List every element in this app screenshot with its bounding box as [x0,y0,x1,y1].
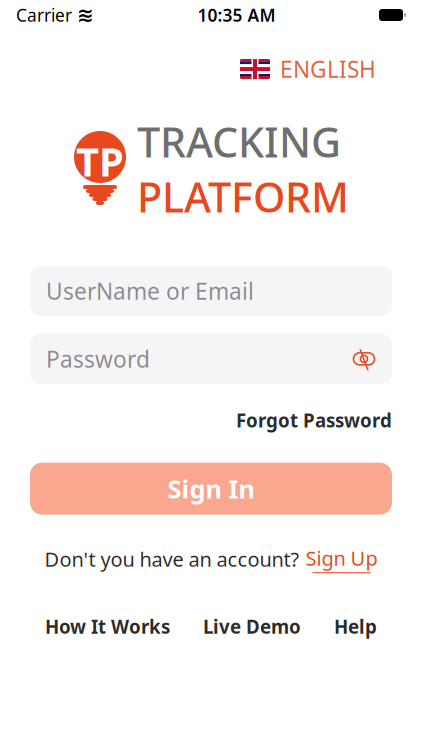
staticText: \ [359,339,369,378]
staticText: Don't you have an account? [44,546,299,572]
button[interactable]: Help [334,608,377,645]
staticText: TP [76,134,124,187]
staticText: UserName or Email [46,276,254,306]
button[interactable]: Sign Up [305,545,377,573]
staticText: Help [334,614,377,639]
staticText: Sign In [167,472,254,505]
staticText: ≋ [77,4,94,26]
staticText: ENGLISH [280,54,376,84]
staticText: 10:35 AM [197,3,275,26]
button[interactable]: How It Works [45,608,170,645]
staticText: Carrier [16,3,72,26]
staticText: PLATFORM [137,169,349,224]
staticText: Sign Up [305,545,377,571]
staticText: How It Works [45,614,170,639]
button[interactable]: Forgot Password [236,404,392,437]
staticText: Password [46,344,150,374]
button[interactable]: Sign In [30,463,392,515]
button[interactable]: Live Demo [203,608,301,645]
staticText: TRACKING [137,114,341,169]
button[interactable]: Password [30,334,392,384]
staticText: Live Demo [203,614,301,639]
staticText: Forgot Password [236,408,392,433]
button[interactable]: UserName or Email [30,266,392,316]
button[interactable]: ENGLISH [240,48,376,90]
